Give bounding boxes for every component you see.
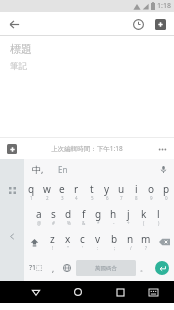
staticText: 1:18 [157, 1, 171, 11]
button[interactable]: n [122, 229, 138, 255]
button[interactable]: v [90, 229, 106, 255]
staticText: y [104, 182, 110, 196]
staticText: ? [145, 245, 147, 251]
button[interactable]: k [136, 204, 151, 229]
button[interactable]: e [54, 179, 69, 204]
button[interactable]: 萬國碼合 [76, 260, 136, 276]
staticText: r [74, 182, 79, 196]
staticText: 1 [30, 195, 33, 201]
button[interactable]: w [39, 179, 54, 204]
staticText: l [157, 207, 160, 221]
staticText: 0 [165, 195, 168, 201]
staticText: + [127, 220, 130, 226]
button[interactable]: y [99, 179, 114, 204]
button[interactable]: m [138, 229, 154, 255]
staticText: v [95, 232, 101, 246]
button[interactable]: g [91, 204, 106, 229]
button[interactable]: Archive [150, 14, 170, 34]
staticText: g [95, 207, 102, 221]
staticText: 2 [46, 195, 49, 201]
staticText: b [111, 232, 118, 246]
button[interactable]: Collapse [3, 227, 21, 245]
button[interactable]: 。 [137, 255, 150, 281]
staticText: j [127, 207, 130, 221]
button[interactable]: u [114, 179, 129, 204]
staticText: # [52, 220, 55, 226]
button[interactable]: Enter [150, 255, 174, 281]
button[interactable]: r [69, 179, 84, 204]
button[interactable]: l [151, 204, 166, 229]
staticText: p [163, 182, 170, 196]
staticText: ( [143, 220, 145, 226]
button[interactable]: Recents [111, 283, 129, 301]
button[interactable]: More options [153, 140, 171, 158]
button[interactable]: z [45, 229, 60, 255]
button[interactable]: s [46, 204, 61, 229]
staticText: m [141, 232, 151, 246]
staticText: 中, [32, 163, 44, 175]
staticText: d [65, 207, 72, 221]
staticText: 7 [120, 195, 123, 201]
button[interactable]: Symbols [24, 255, 47, 281]
button[interactable]: En [58, 164, 68, 175]
button[interactable]: Keyboard layout [3, 181, 21, 199]
staticText: h [110, 207, 117, 221]
button[interactable]: d [61, 204, 76, 229]
button[interactable]: a [31, 204, 46, 229]
button[interactable]: b [106, 229, 122, 255]
button[interactable]: c [75, 229, 90, 255]
staticText: ' [82, 245, 84, 251]
staticText: En [58, 164, 68, 175]
button[interactable]: Voice input [156, 162, 170, 176]
button[interactable]: i [129, 179, 144, 204]
staticText: x [65, 232, 71, 246]
staticText: % [67, 220, 71, 226]
staticText: t [90, 182, 94, 196]
button[interactable]: Back [4, 14, 24, 34]
button[interactable]: x [60, 229, 75, 255]
button[interactable]: t [84, 179, 99, 204]
button[interactable]: o [144, 179, 159, 204]
staticText: e [59, 182, 65, 196]
staticText: 筆記 [10, 61, 27, 72]
button[interactable]: , [47, 255, 59, 281]
staticText: 6 [106, 195, 109, 201]
staticText: / [130, 245, 132, 251]
staticText: 5 [91, 195, 94, 201]
staticText: 8 [135, 195, 138, 201]
staticText: ) [158, 220, 160, 226]
button[interactable]: Backspace [154, 229, 174, 255]
staticText: 3 [61, 195, 64, 201]
button[interactable]: Shift [24, 229, 45, 255]
staticText: n [127, 232, 134, 246]
staticText: ?1⬚ [29, 263, 43, 273]
button[interactable]: Hide keyboard [27, 283, 45, 301]
staticText: 。 [140, 264, 147, 273]
button[interactable]: 中, [32, 163, 44, 175]
button[interactable]: Home [69, 283, 87, 301]
staticText: 9 [150, 195, 153, 201]
staticText: z [50, 232, 55, 246]
staticText: c [80, 232, 85, 246]
button[interactable]: p [159, 179, 174, 204]
staticText: * [97, 220, 100, 226]
staticText: " [67, 245, 69, 251]
staticText: u [118, 182, 125, 196]
staticText: i [135, 182, 138, 196]
button[interactable]: j [121, 204, 136, 229]
staticText: w [43, 182, 51, 196]
staticText: 標題 [10, 42, 32, 56]
button[interactable]: Language [59, 255, 75, 281]
button[interactable]: Reminder [128, 14, 148, 34]
staticText: 4 [75, 195, 78, 201]
button[interactable]: h [106, 204, 121, 229]
button[interactable]: Add [3, 140, 21, 158]
button[interactable]: Switch keyboard [144, 283, 162, 301]
staticText: 萬國碼合 [95, 265, 117, 272]
staticText: & [82, 220, 86, 226]
button[interactable]: q [24, 179, 39, 204]
staticText: o [148, 182, 155, 196]
button[interactable]: f [76, 204, 91, 229]
staticText: q [28, 182, 35, 196]
staticText: ! [52, 245, 54, 251]
